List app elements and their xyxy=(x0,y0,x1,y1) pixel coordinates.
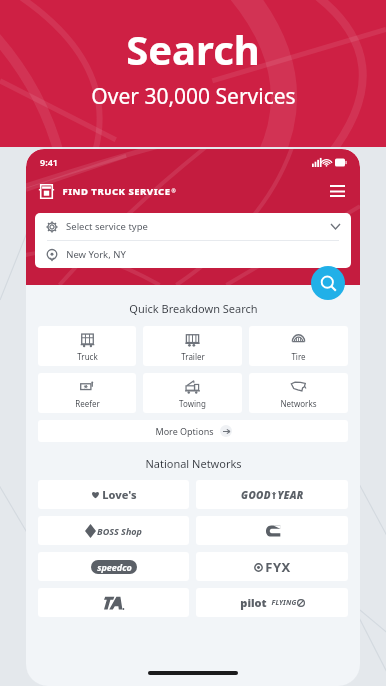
staticText: FYX xyxy=(265,558,291,576)
button[interactable]: More Options xyxy=(38,420,348,442)
staticText: BOSS Shop xyxy=(97,525,142,537)
staticText: speedco xyxy=(97,561,132,573)
staticText: Truck xyxy=(77,351,98,362)
staticText: Search xyxy=(126,22,260,76)
button[interactable]: Tire xyxy=(249,326,348,366)
staticText: 9:41 xyxy=(40,156,58,168)
staticText: FIND TRUCK SERVICE xyxy=(62,185,171,198)
staticText: GOOD xyxy=(241,488,271,502)
staticText: Quick Breakdown Search xyxy=(129,301,258,316)
staticText: Tire xyxy=(291,351,306,362)
button[interactable]: Menu xyxy=(326,180,348,202)
button[interactable]: BOSS Shop xyxy=(38,516,189,545)
button[interactable]: GOOD xyxy=(196,480,348,509)
button[interactable]: Towing xyxy=(143,373,242,413)
staticText: Towing xyxy=(179,398,206,409)
button[interactable]: pilot xyxy=(196,588,348,617)
staticText: Networks xyxy=(280,398,317,409)
button[interactable]: Love's xyxy=(38,480,189,509)
button[interactable]: speedco xyxy=(38,552,189,581)
button[interactable] xyxy=(196,516,348,545)
button[interactable]: Select service type xyxy=(35,213,351,240)
staticText: Select service type xyxy=(66,220,148,233)
button[interactable] xyxy=(38,588,189,617)
staticText: National Networks xyxy=(145,456,242,471)
button[interactable]: Search xyxy=(311,266,345,300)
button[interactable]: Networks xyxy=(249,373,348,413)
button[interactable]: Reefer xyxy=(38,373,136,413)
staticText: ® xyxy=(171,188,176,195)
staticText: Trailer xyxy=(181,351,205,362)
staticText: pilot xyxy=(240,595,267,610)
staticText: Love's xyxy=(102,487,137,502)
button[interactable]: New York, NY xyxy=(35,241,351,268)
staticText: FLYING xyxy=(271,598,297,608)
button[interactable]: FYX xyxy=(196,552,348,581)
button[interactable]: Find Truck Service logo xyxy=(38,183,55,200)
staticText: YEAR xyxy=(277,488,304,502)
staticText: Reefer xyxy=(75,398,100,409)
button[interactable]: Truck xyxy=(38,326,136,366)
staticText: New York, NY xyxy=(66,248,126,261)
staticText: Over 30,000 Services xyxy=(91,82,296,111)
button[interactable]: Trailer xyxy=(143,326,242,366)
staticText: More Options xyxy=(155,425,214,437)
